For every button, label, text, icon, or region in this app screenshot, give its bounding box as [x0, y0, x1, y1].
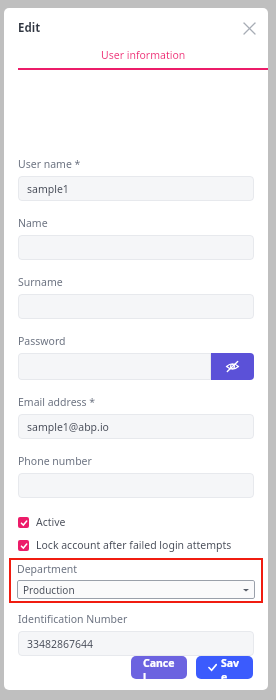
staticText: Cancel	[143, 656, 175, 679]
button[interactable]: Save	[196, 656, 253, 679]
staticText: Identification Number	[18, 612, 128, 626]
button[interactable]: Active	[18, 515, 254, 529]
staticText: sample1	[27, 182, 69, 196]
button[interactable]: sample1	[18, 176, 254, 201]
button[interactable]: User information	[18, 48, 268, 70]
staticText: User name *	[18, 157, 81, 171]
staticText: Active	[36, 515, 66, 529]
button[interactable]	[18, 473, 254, 498]
staticText: User information	[101, 48, 186, 62]
button[interactable]: Production	[17, 580, 255, 599]
staticText: Production	[23, 583, 243, 597]
staticText: Email address *	[18, 395, 96, 409]
staticText: 33482867644	[27, 637, 94, 651]
staticText: Phone number	[18, 454, 92, 468]
button[interactable]	[18, 294, 254, 319]
button[interactable]: Cancel	[131, 656, 187, 679]
staticText: sample1@abp.io	[27, 420, 109, 434]
button[interactable]: Show password	[211, 353, 254, 380]
staticText: Department	[17, 562, 78, 576]
button[interactable]: 33482867644	[18, 631, 254, 656]
button[interactable]: Lock account after failed login attempts	[18, 538, 254, 552]
staticText: Name	[18, 216, 48, 230]
staticText: Lock account after failed login attempts	[36, 538, 232, 552]
staticText: Save	[221, 656, 241, 679]
button[interactable]	[18, 235, 254, 260]
staticText: Password	[18, 334, 66, 348]
staticText: Edit	[18, 20, 41, 36]
button[interactable]: sample1@abp.io	[18, 414, 254, 439]
button[interactable]	[18, 353, 211, 380]
button[interactable]: Close	[239, 18, 259, 38]
staticText: Surname	[18, 275, 63, 289]
